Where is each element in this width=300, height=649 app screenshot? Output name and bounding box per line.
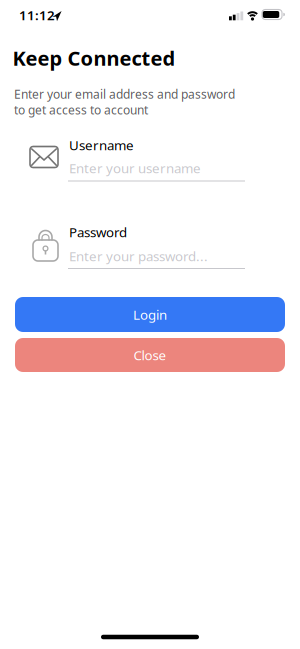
staticText: Enter your password... [69, 247, 208, 265]
staticText: Password [69, 223, 127, 241]
staticText: Login [133, 306, 167, 323]
staticText: Close [133, 346, 166, 364]
button[interactable]: Close [15, 338, 285, 372]
staticText: 11:12 [19, 6, 55, 24]
staticText: Username [69, 136, 134, 154]
staticText: Enter your email address and password to… [14, 86, 235, 118]
staticText: Enter your username [69, 159, 201, 177]
staticText: Keep Connected [12, 45, 175, 71]
button[interactable]: Login [15, 297, 285, 332]
